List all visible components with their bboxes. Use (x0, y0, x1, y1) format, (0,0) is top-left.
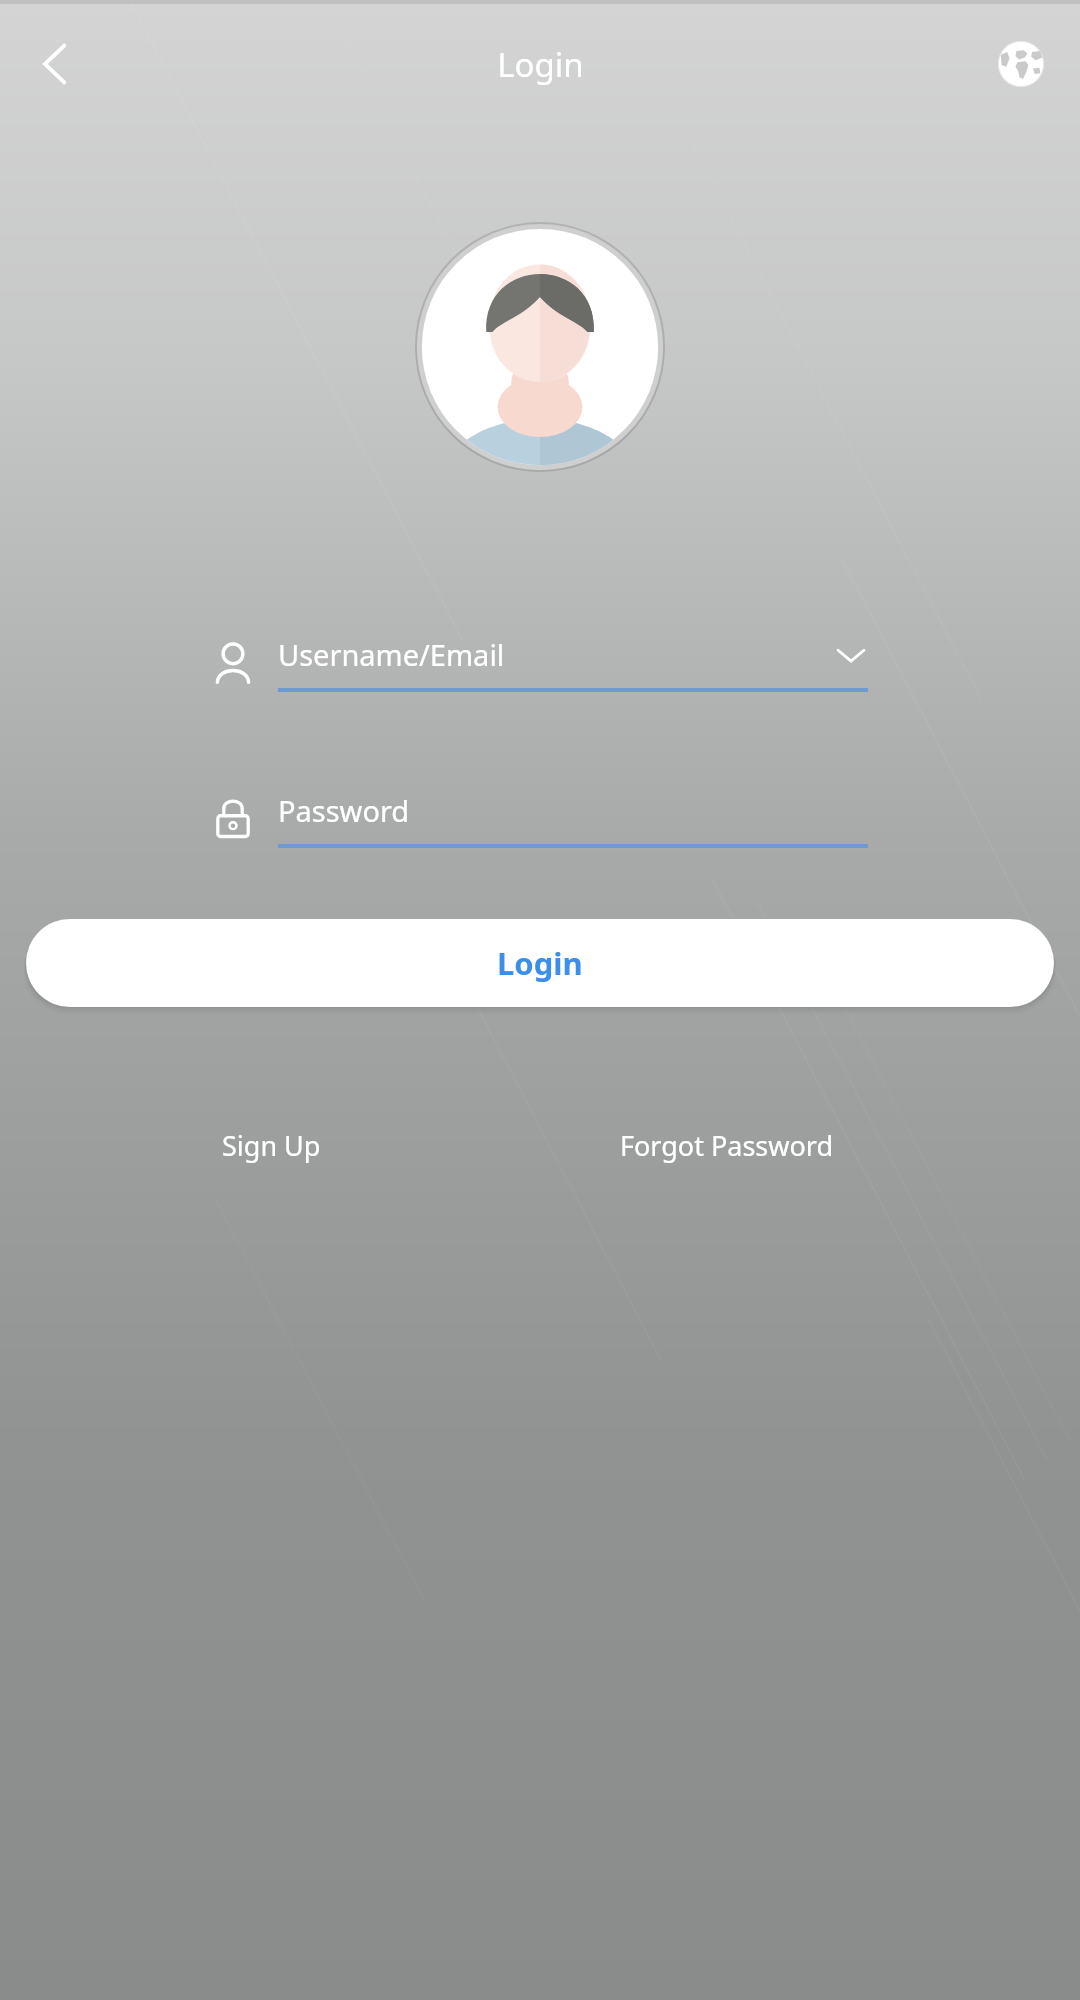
button[interactable]: Language (982, 25, 1060, 103)
button[interactable]: Login (26, 919, 1054, 1007)
button[interactable]: Forgot Password (612, 1117, 842, 1174)
staticText: Sign Up (222, 1127, 321, 1164)
staticText: Forgot Password (620, 1127, 834, 1164)
staticText: Login (497, 42, 584, 87)
staticText: Login (497, 942, 583, 984)
button[interactable]: Password (210, 776, 868, 862)
button[interactable]: Sign Up (214, 1117, 329, 1174)
staticText: Password (278, 791, 868, 830)
button[interactable]: Back (14, 22, 98, 106)
button[interactable]: Username or Email (210, 620, 868, 706)
staticText: Username/Email (278, 635, 834, 674)
